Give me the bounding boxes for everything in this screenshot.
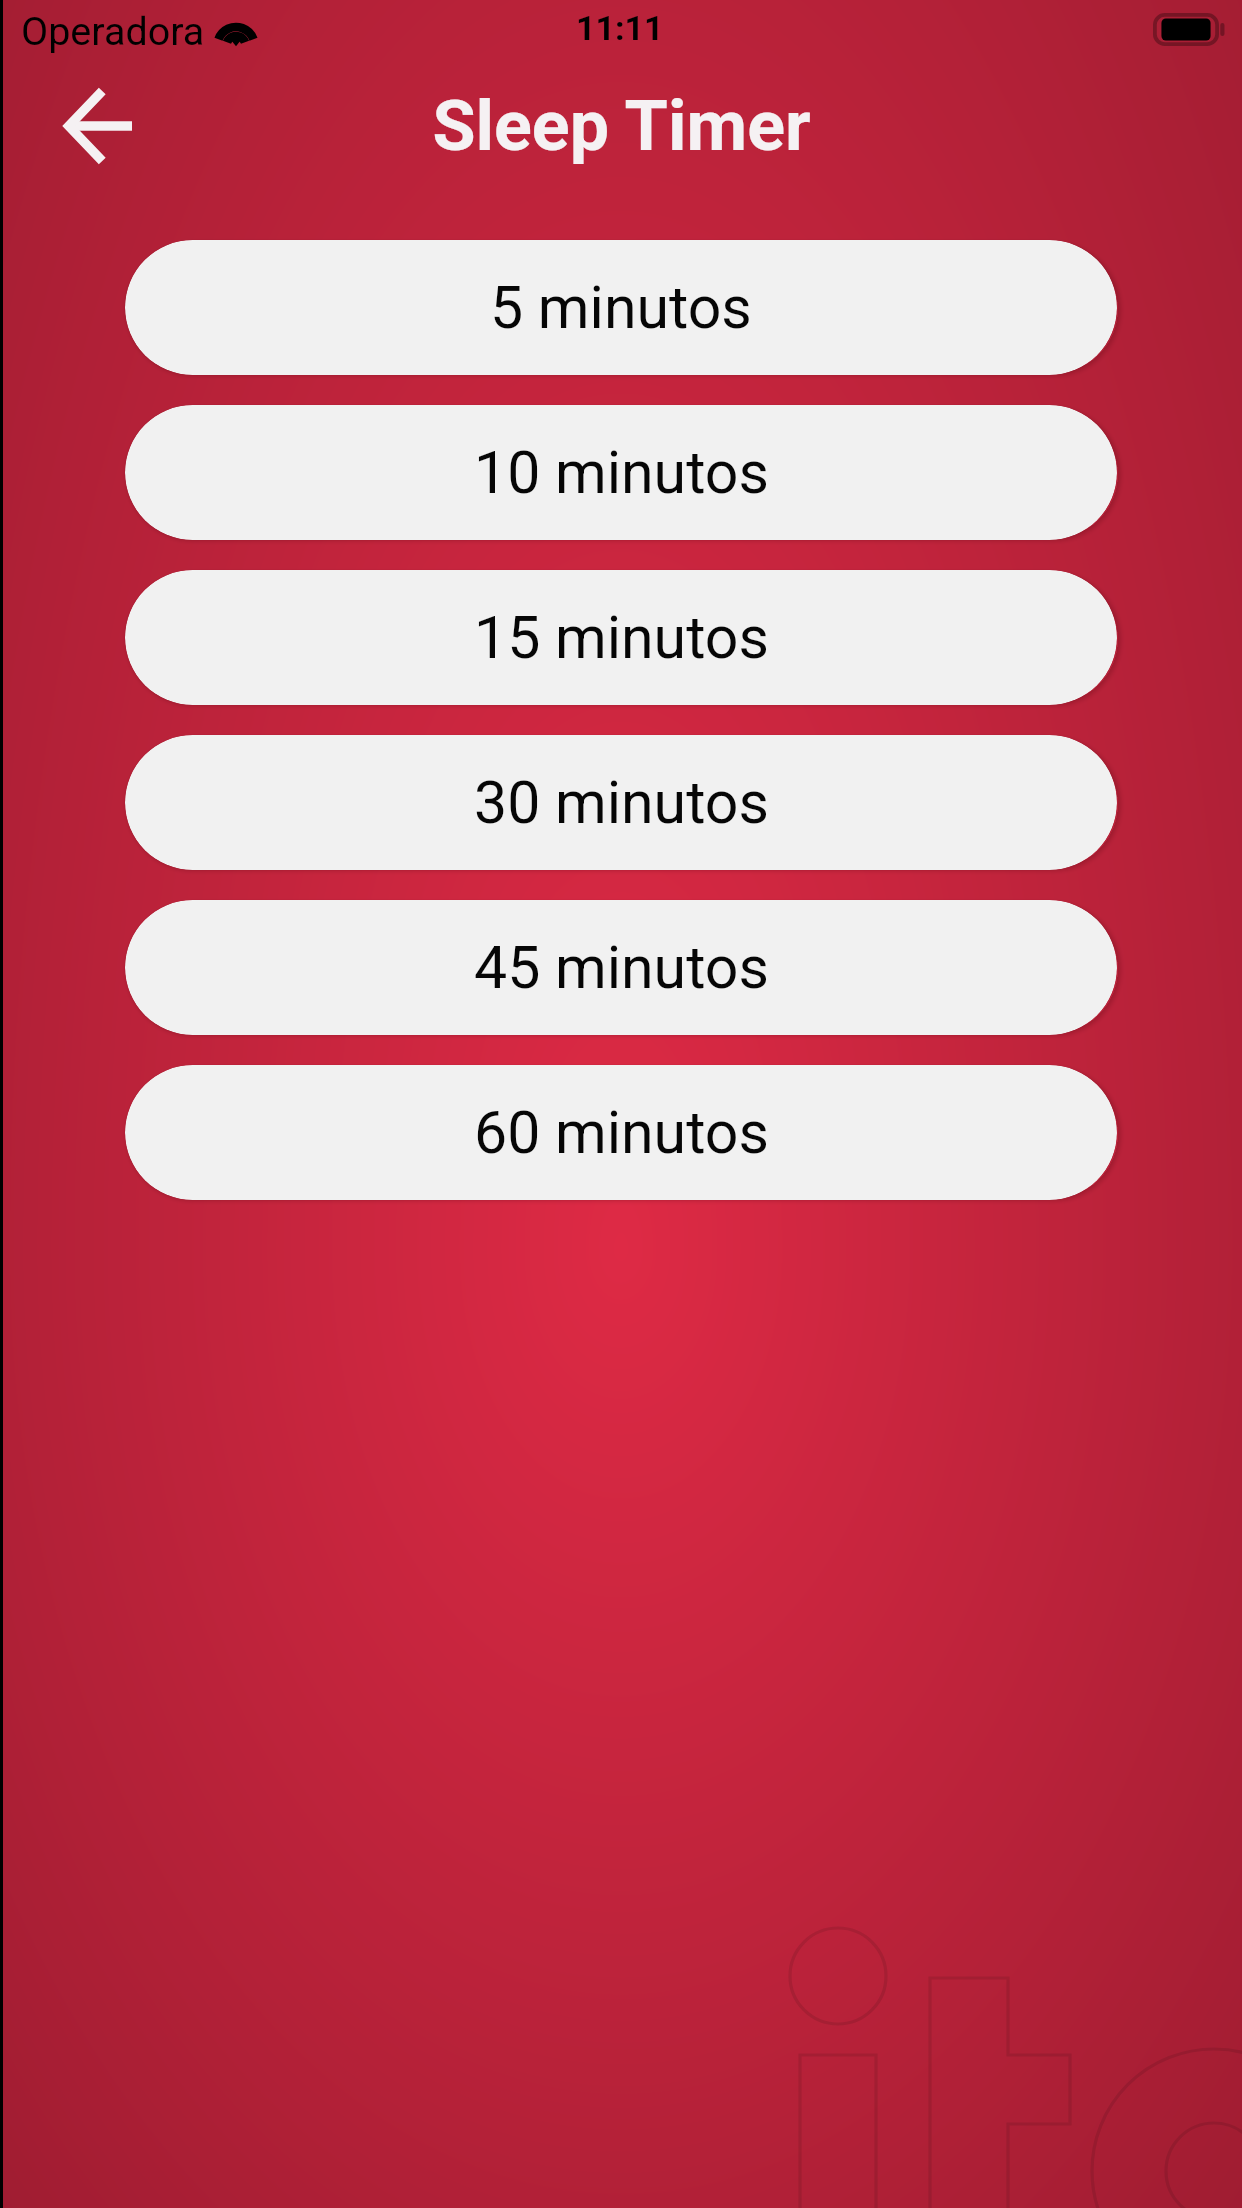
button[interactable]: 5 minutos (125, 240, 1117, 375)
staticText: 15 minutos (474, 603, 769, 672)
button[interactable]: Back (12, 59, 122, 199)
button[interactable]: 30 minutos (125, 735, 1117, 870)
staticText: 45 minutos (474, 933, 769, 1002)
staticText: 60 minutos (474, 1098, 769, 1167)
button[interactable]: 15 minutos (125, 570, 1117, 705)
staticText: 30 minutos (474, 768, 769, 837)
button[interactable]: 60 minutos (125, 1065, 1117, 1200)
staticText: 11:11 (576, 8, 664, 48)
staticText: Operadora (21, 8, 205, 54)
staticText: 10 minutos (474, 438, 769, 507)
button[interactable]: 45 minutos (125, 900, 1117, 1035)
button[interactable]: 10 minutos (125, 405, 1117, 540)
staticText: Sleep Timer (432, 85, 811, 167)
staticText: 5 minutos (490, 273, 752, 342)
